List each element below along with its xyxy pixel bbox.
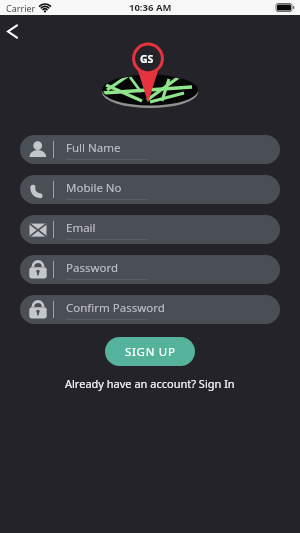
button[interactable]: Full Name xyxy=(20,135,280,164)
button[interactable] xyxy=(3,20,25,42)
staticText: SIGN UP xyxy=(125,344,176,360)
staticText: Confirm Password xyxy=(66,300,165,316)
button[interactable]: Email xyxy=(20,215,280,244)
staticText: Email xyxy=(66,220,96,236)
staticText: Mobile No xyxy=(66,180,122,196)
button[interactable]: Confirm Password xyxy=(20,295,280,324)
staticText: Already have an account? Sign In xyxy=(65,376,235,391)
button[interactable]: Mobile No xyxy=(20,175,280,204)
button[interactable]: Already have an account? Sign In xyxy=(0,374,300,392)
staticText: 10:36 AM xyxy=(129,1,172,14)
staticText: Full Name xyxy=(66,140,121,156)
button[interactable]: SIGN UP xyxy=(105,337,195,366)
staticText: Password xyxy=(66,260,119,276)
staticText: GS xyxy=(140,52,154,66)
staticText: Carrier xyxy=(6,2,36,14)
button[interactable]: Password xyxy=(20,255,280,284)
